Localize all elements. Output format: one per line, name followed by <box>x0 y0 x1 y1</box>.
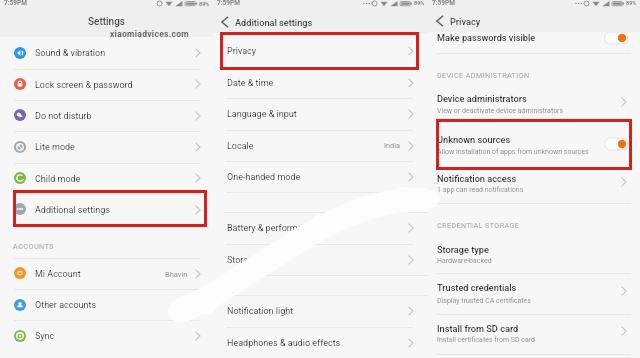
staticText: Additional settings <box>35 205 110 216</box>
button[interactable] <box>0 69 213 100</box>
button[interactable] <box>428 169 640 199</box>
staticText: Privacy <box>227 46 257 57</box>
staticText: Hardware-backed <box>437 257 492 265</box>
button[interactable] <box>428 30 640 48</box>
staticText: Lock screen & password <box>35 80 133 91</box>
button[interactable] <box>0 131 213 162</box>
staticText: 7:59PM <box>432 0 455 7</box>
button[interactable]: Back <box>218 15 232 29</box>
staticText: Install from SD card <box>437 323 519 334</box>
button[interactable] <box>0 37 213 68</box>
staticText: 89% <box>414 0 425 6</box>
staticText: Privacy <box>450 16 481 27</box>
staticText: Storage <box>227 255 258 266</box>
staticText: Mi Account <box>35 269 81 280</box>
staticText: Lite mode <box>35 142 75 153</box>
staticText: Unknown sources <box>437 134 511 145</box>
button[interactable] <box>428 120 640 168</box>
button[interactable] <box>213 35 428 67</box>
staticText: DEVICE ADMINISTRATION <box>437 71 530 79</box>
staticText: Do not disturb <box>35 111 92 122</box>
staticText: Language & input <box>227 109 297 120</box>
staticText: Settings <box>88 16 126 28</box>
button[interactable]: Toggle setting <box>604 137 628 151</box>
staticText: Child mode <box>35 174 81 185</box>
button[interactable] <box>428 88 640 117</box>
button[interactable] <box>213 212 428 244</box>
staticText: Sound & vibration <box>35 48 106 59</box>
staticText: Battery & performance <box>227 223 318 234</box>
staticText: Device administrators <box>437 93 527 104</box>
button[interactable] <box>213 327 428 358</box>
button[interactable]: Back <box>433 14 447 28</box>
staticText: Date & time <box>227 78 274 89</box>
staticText: Display trusted CA certificates <box>437 297 531 305</box>
staticText: CREDENTIAL STORAGE <box>437 221 520 229</box>
staticText: Locale <box>227 141 254 152</box>
button[interactable] <box>0 289 213 320</box>
staticText: 89% <box>626 0 637 6</box>
button[interactable] <box>0 321 213 352</box>
staticText: xiaomiadvices.com <box>110 29 189 39</box>
staticText: Sync <box>35 331 55 342</box>
button[interactable] <box>428 277 640 311</box>
staticText: View or deactivate device administrators <box>437 107 564 115</box>
staticText: Notification access <box>437 173 517 184</box>
button[interactable]: Toggle setting <box>604 31 628 45</box>
staticText: Additional settings <box>235 17 313 28</box>
staticText: ACCOUNTS <box>13 242 55 250</box>
staticText: Notification light <box>227 306 294 317</box>
button[interactable] <box>0 194 213 225</box>
staticText: Bhavin <box>165 270 188 279</box>
button[interactable] <box>213 130 428 162</box>
staticText: Make passwords visible <box>437 32 536 43</box>
staticText: 7:59PM <box>217 0 240 7</box>
button[interactable] <box>0 100 213 131</box>
staticText: 7:59PM <box>4 0 27 7</box>
staticText: Headphones & audio effects <box>227 338 341 349</box>
staticText: Storage type <box>437 244 489 255</box>
staticText: Other accounts <box>35 300 97 311</box>
staticText: Trusted credentials <box>437 282 517 293</box>
button[interactable] <box>213 98 428 130</box>
button[interactable] <box>428 238 640 270</box>
button[interactable] <box>213 161 428 193</box>
staticText: 1 app can read notifications <box>437 186 524 194</box>
button[interactable] <box>213 295 428 327</box>
button[interactable] <box>0 258 213 289</box>
button[interactable] <box>428 317 640 351</box>
staticText: Allow installation of apps from unknown … <box>437 148 589 156</box>
staticText: One-handed mode <box>227 172 301 183</box>
staticText: 89% <box>199 1 210 7</box>
button[interactable] <box>213 67 428 99</box>
staticText: Install certificates from SD card <box>437 336 536 344</box>
button[interactable] <box>0 163 213 194</box>
button[interactable] <box>213 244 428 276</box>
staticText: India <box>384 141 400 150</box>
